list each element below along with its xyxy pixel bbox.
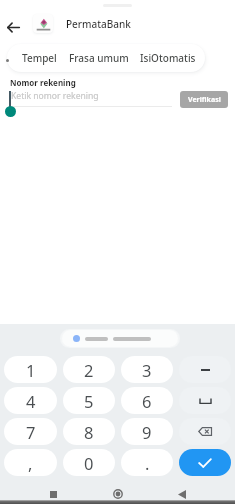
button[interactable]: IsiOtomatis [137, 44, 199, 72]
staticText: IsiOtomatis [140, 51, 196, 65]
button[interactable]: 9 [121, 418, 173, 445]
button[interactable]: 5 [63, 387, 115, 414]
staticText: 1 [26, 359, 36, 381]
button[interactable]: 1 [4, 356, 57, 383]
button[interactable]: 6 [121, 387, 173, 414]
button[interactable]: 8 [63, 418, 115, 445]
button[interactable]: Frasa umum [69, 44, 129, 72]
button[interactable]: Tempel [9, 44, 69, 72]
staticText: Nomor rekening [10, 77, 76, 88]
button[interactable]: Recent apps [42, 483, 64, 504]
staticText: 6 [142, 390, 152, 412]
staticText: Tempel [22, 51, 57, 65]
staticText: 7 [26, 421, 36, 443]
button[interactable]: 0 [63, 449, 115, 476]
button[interactable]: Backspace [179, 418, 231, 445]
staticText: PermataBank [66, 17, 131, 30]
button[interactable]: 2 [63, 356, 115, 383]
button[interactable]: Back [3, 17, 23, 37]
button[interactable]: PermataBank app icon [33, 14, 53, 33]
staticText: 0 [84, 452, 94, 474]
button[interactable]: Verifikasi [180, 91, 228, 108]
staticText: 3 [142, 359, 152, 381]
button[interactable]: Enter [179, 449, 231, 476]
button[interactable] [62, 330, 178, 347]
button[interactable]: 4 [4, 387, 57, 414]
button[interactable]: 3 [121, 356, 173, 383]
button[interactable]: Home [107, 483, 129, 504]
staticText: 2 [84, 359, 94, 381]
staticText: 9 [142, 421, 152, 443]
button[interactable]: 7 [4, 418, 57, 445]
button[interactable]: Back [171, 483, 193, 504]
staticText: 4 [26, 390, 36, 412]
button[interactable]: , [4, 449, 57, 476]
staticText: . [145, 452, 150, 474]
button[interactable]: . [121, 449, 173, 476]
button[interactable]: Dash [179, 356, 231, 383]
button[interactable]: Space [179, 387, 231, 414]
staticText: Ketik nomor rekening [11, 90, 99, 102]
staticText: Verifikasi [188, 95, 221, 105]
staticText: 8 [84, 421, 94, 443]
staticText: , [28, 452, 33, 474]
staticText: 5 [84, 390, 94, 412]
staticText: Frasa umum [69, 51, 129, 65]
